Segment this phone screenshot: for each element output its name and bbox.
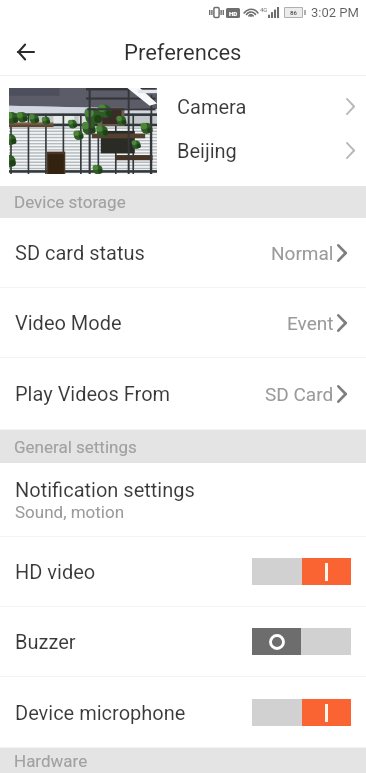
button[interactable]: Device microphone <box>0 677 366 747</box>
staticText: HD <box>229 10 238 17</box>
staticText: SD card status <box>15 241 145 264</box>
staticText: Video Mode <box>15 311 122 334</box>
staticText: General settings <box>14 437 137 457</box>
staticText: Device microphone <box>15 701 186 724</box>
button[interactable]: Buzzer <box>0 607 366 676</box>
button[interactable]: Back <box>8 35 42 69</box>
button[interactable]: SD card status <box>0 218 366 287</box>
staticText: Preferences <box>124 40 242 66</box>
staticText: Hardware <box>14 751 88 771</box>
button[interactable]: Camera <box>177 84 355 128</box>
staticText: 4G <box>260 6 268 13</box>
button[interactable]: HD video <box>0 537 366 606</box>
staticText: Beijing <box>177 139 237 162</box>
button[interactable]: Video Mode <box>0 288 366 357</box>
staticText: Sound, motion <box>15 502 125 522</box>
staticText: 3:02 PM <box>311 5 359 20</box>
staticText: Buzzer <box>15 630 76 653</box>
staticText: Camera <box>177 95 247 118</box>
staticText: Play Videos From <box>15 382 171 405</box>
staticText: Device storage <box>14 192 126 212</box>
staticText: Notification settings <box>15 478 195 501</box>
button[interactable]: Beijing <box>177 128 355 172</box>
button[interactable]: Play Videos From <box>0 358 366 429</box>
staticText: HD video <box>15 560 96 583</box>
staticText: SD Card <box>265 383 334 405</box>
staticText: 86 <box>290 9 297 16</box>
button[interactable]: Notification settings <box>0 463 366 536</box>
staticText: Event <box>287 312 334 334</box>
staticText: Normal <box>271 242 334 264</box>
